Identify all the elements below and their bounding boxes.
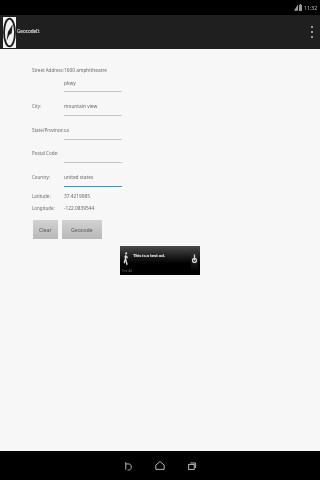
staticText: united states [64, 174, 94, 181]
button[interactable]: More options [304, 15, 320, 49]
button[interactable]: Recent apps [176, 453, 208, 478]
button[interactable] [32, 102, 122, 117]
staticText: Geocode [71, 226, 93, 233]
button[interactable]: Home [144, 453, 176, 478]
staticText: pkwy [64, 80, 76, 87]
staticText: Street Address: [32, 67, 64, 73]
staticText: Postal Code: [32, 150, 59, 156]
staticText: Clear [39, 226, 52, 233]
staticText: Latitude: [32, 193, 51, 199]
button[interactable]: GeocodeIt [0, 15, 45, 49]
staticText: -122.0839544 [64, 205, 95, 212]
staticText: 37.4219985 [64, 193, 90, 200]
staticText: City: [32, 103, 42, 109]
staticText: Longitude: [32, 205, 55, 211]
staticText: 1600 amphitheatre [64, 67, 107, 74]
button[interactable]: Back [112, 453, 144, 478]
staticText: This is a test ad. [133, 252, 166, 258]
button[interactable] [32, 149, 122, 164]
staticText: Country: [32, 174, 51, 180]
staticText: 11:32 [304, 4, 318, 11]
button[interactable] [32, 66, 122, 93]
button[interactable]: Advertisement [120, 246, 200, 275]
button[interactable]: Clear [33, 220, 58, 239]
staticText: GeocodeIt [17, 28, 40, 34]
staticText: Test Ad [122, 269, 133, 273]
button[interactable]: Geocode [62, 220, 102, 239]
staticText: ca [64, 127, 69, 134]
staticText: mountain view [64, 103, 98, 110]
staticText: State/Province: [32, 127, 64, 133]
button[interactable] [32, 126, 122, 141]
button[interactable] [32, 173, 122, 188]
